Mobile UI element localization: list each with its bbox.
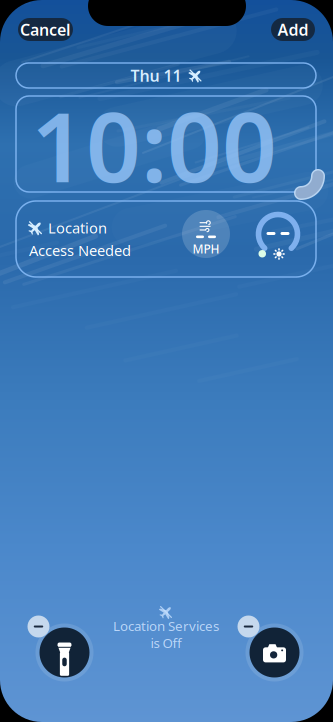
staticText: Access Needed: [29, 240, 131, 260]
button[interactable]: Remove Flashlight shortcut: [23, 611, 93, 681]
button[interactable]: Remove Camera shortcut: [233, 611, 303, 681]
button[interactable]: Location: [16, 201, 316, 277]
button[interactable]: 10:00: [16, 96, 316, 192]
staticText: Location: [48, 218, 107, 237]
staticText: Add: [277, 19, 308, 40]
button[interactable]: Cancel: [18, 18, 73, 41]
button[interactable]: Add: [271, 18, 315, 41]
staticText: 10:00: [31, 81, 277, 209]
staticText: MPH: [192, 241, 219, 257]
staticText: Thu 11: [130, 65, 181, 86]
staticText: Cancel: [20, 19, 71, 40]
staticText: is Off: [150, 634, 181, 652]
button[interactable]: Thu 11: [16, 63, 316, 88]
staticText: Location Services: [113, 617, 219, 635]
